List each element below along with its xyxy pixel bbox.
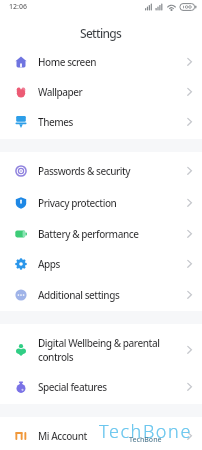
button[interactable]: Privacy protection — [0, 187, 202, 218]
staticText: Special features — [38, 380, 107, 394]
staticText: Wallpaper — [38, 85, 83, 99]
staticText: controls — [38, 350, 74, 364]
button[interactable]: Additional settings — [0, 279, 202, 310]
staticText: Privacy protection — [38, 196, 117, 210]
staticText: Digital Wellbeing & parental — [38, 336, 160, 350]
button[interactable]: Digital Wellbeing & parental — [0, 332, 202, 368]
staticText: Mi Account — [38, 429, 87, 443]
button[interactable]: Themes — [0, 107, 202, 137]
staticText: 12:06 — [9, 2, 27, 12]
button[interactable]: Home screen — [0, 47, 202, 77]
staticText: Apps — [38, 257, 61, 271]
staticText: Settings — [80, 25, 122, 41]
staticText: Additional settings — [38, 288, 120, 302]
staticText: Battery & performance — [38, 227, 139, 241]
button[interactable]: Apps — [0, 248, 202, 279]
staticText: Home screen — [38, 55, 96, 69]
button[interactable]: Mi Account — [0, 421, 202, 450]
button[interactable]: Battery & performance — [0, 218, 202, 249]
staticText: Themes — [38, 115, 73, 129]
button[interactable]: Wallpaper — [0, 77, 202, 107]
button[interactable]: Passwords & security — [0, 155, 202, 186]
staticText: Passwords & security — [38, 164, 131, 178]
staticText: TechBone — [99, 419, 192, 444]
staticText: TechBone — [129, 435, 162, 445]
button[interactable]: Special features — [0, 372, 202, 402]
